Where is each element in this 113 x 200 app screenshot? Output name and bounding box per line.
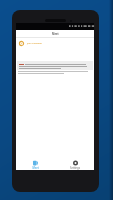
button[interactable]: Join a Meeting (16, 38, 94, 49)
staticText: Meet (32, 166, 39, 170)
staticText: Meet (52, 32, 59, 36)
staticText: Settings (70, 166, 80, 170)
button[interactable]: Settings (55, 157, 94, 170)
button[interactable]: Meet (16, 157, 55, 170)
staticText: Join a Meeting (27, 42, 42, 45)
